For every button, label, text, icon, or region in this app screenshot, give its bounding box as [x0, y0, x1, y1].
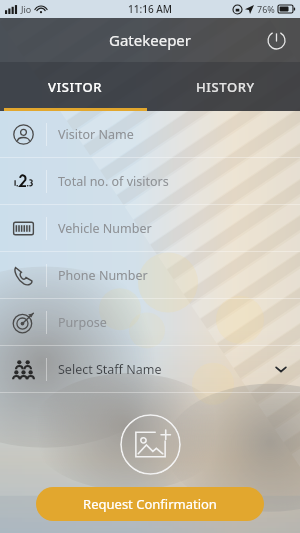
- staticText: Jio: [21, 3, 32, 15]
- button[interactable]: Logout: [260, 24, 292, 56]
- staticText: HISTORY: [196, 78, 255, 96]
- button[interactable]: Visitor Name: [0, 111, 300, 158]
- button[interactable]: Total no. of visitors: [0, 158, 300, 205]
- button[interactable]: HISTORY: [150, 62, 300, 111]
- button[interactable]: Select Staff Name: [0, 346, 300, 393]
- staticText: Vehicle Number: [58, 220, 152, 237]
- button[interactable]: Add photo: [120, 414, 181, 475]
- button[interactable]: VISITOR: [0, 62, 150, 111]
- staticText: 76%: [257, 3, 275, 15]
- button[interactable]: Vehicle Number: [0, 205, 300, 252]
- button[interactable]: Purpose: [0, 299, 300, 346]
- staticText: Gatekeeper: [109, 30, 192, 50]
- staticText: Phone Number: [58, 267, 148, 284]
- button[interactable]: Request Confirmation: [36, 487, 264, 521]
- staticText: Request Confirmation: [83, 495, 217, 513]
- staticText: Visitor Name: [58, 126, 134, 143]
- staticText: Total no. of visitors: [58, 173, 169, 190]
- staticText: 11:16 AM: [128, 2, 172, 16]
- staticText: Select Staff Name: [58, 361, 162, 378]
- staticText: VISITOR: [48, 78, 103, 96]
- staticText: Purpose: [58, 314, 107, 331]
- button[interactable]: Phone Number: [0, 252, 300, 299]
